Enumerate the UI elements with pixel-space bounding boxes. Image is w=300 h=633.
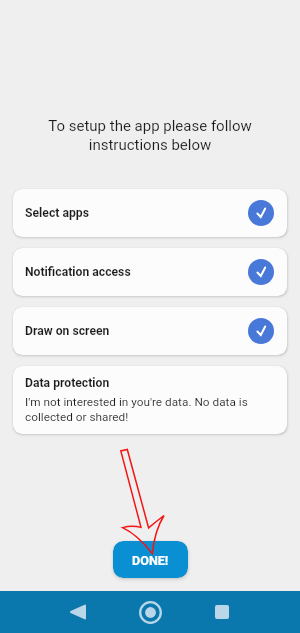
button[interactable]: DONE! (113, 541, 188, 578)
button[interactable]: Notification access (13, 248, 287, 296)
staticText: To setup the app please follow instructi… (28, 117, 272, 154)
button[interactable]: Select apps (13, 189, 287, 237)
button[interactable]: Back (57, 591, 99, 633)
staticText: Select apps (25, 206, 89, 220)
staticText: I'm not interested in you're data. No da… (25, 395, 275, 424)
staticText: Notification access (25, 265, 131, 279)
button[interactable]: Draw on screen (13, 307, 287, 355)
staticText: Draw on screen (25, 324, 110, 338)
button[interactable]: Recents (201, 591, 243, 633)
staticText: Data protection (25, 376, 110, 390)
staticText: DONE! (132, 553, 169, 568)
button[interactable]: Home (129, 591, 171, 633)
